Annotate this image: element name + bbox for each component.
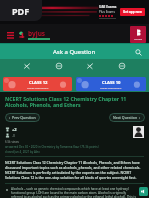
button[interactable]: PDF [0,0,42,21]
button[interactable]: Downvote [5,133,10,138]
staticText: NCERT SOLUTIONS [100,86,122,89]
button[interactable]: Next Question › [109,113,145,122]
staticText: UAE Exams [99,5,117,9]
staticText: CLASS 12 [29,80,48,86]
button[interactable]: Search [133,47,143,57]
staticText: PDF [12,5,30,17]
staticText: Ask a Question [53,48,96,56]
staticText: +2 [12,127,17,132]
button[interactable]: CLASS 10 [76,77,146,91]
button[interactable]: Get app now [120,8,145,16]
staticText: ‹ Prev Question [9,115,36,120]
staticText: Google [134,37,143,40]
button[interactable]: Play audio [139,187,148,196]
button[interactable]: Author avatar [133,126,144,138]
button[interactable]: Download app [130,26,146,43]
staticText: 6.5k views [5,140,19,144]
staticText: answered Dec 30 • 2020 in Chemistry by T… [5,145,99,149]
staticText: closed Jun 4, 2021 by Alex [5,150,40,154]
staticText: NCERT Solutions Class 12 Chemistry Chapt… [5,95,145,109]
button[interactable]: Upvote [5,127,10,132]
button[interactable]: CLASS 12 [3,77,72,91]
staticText: NCERT SOLUTIONS [27,86,49,89]
staticText: Next Question › [113,115,141,120]
button[interactable]: ‹ Prev Question [5,113,40,122]
button[interactable]: Menu [5,30,15,40]
staticText: Get app now [123,10,142,14]
button[interactable]: Ask a Question [0,44,149,59]
staticText: -0 [12,133,16,138]
staticText: Alcohols – such as generic chemical comp… [11,187,137,198]
staticText: NCERT Solutions Class 12 Chemistry Chapt… [5,160,144,180]
staticText: CLASS 10 [102,80,121,86]
staticText: byjus [28,29,46,38]
staticText: Plus Exams [99,10,115,14]
